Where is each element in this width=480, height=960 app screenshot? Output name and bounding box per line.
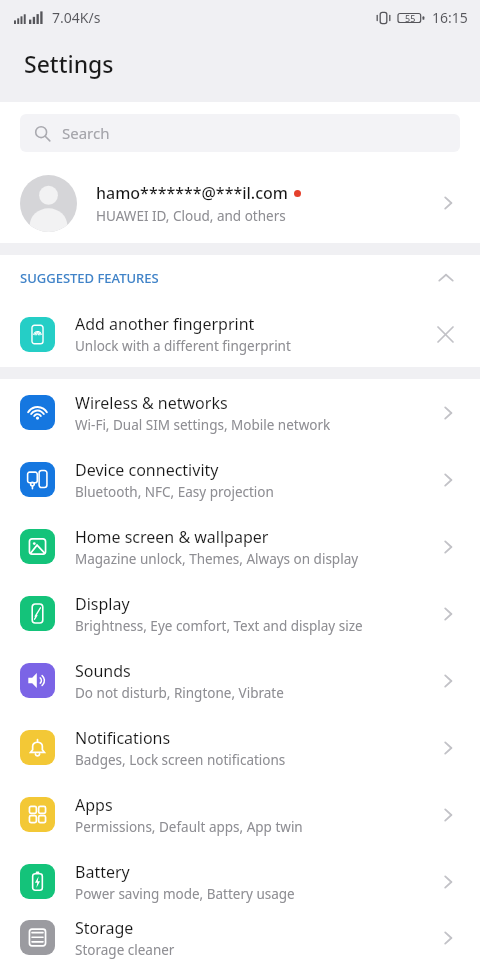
staticText: Badges, Lock screen notifications (75, 751, 286, 769)
button[interactable]: Search (20, 114, 460, 152)
staticText: Apps (75, 794, 113, 816)
staticText: Bluetooth, NFC, Easy projection (75, 483, 274, 501)
button[interactable]: Home screen & wallpaper (0, 513, 480, 580)
button[interactable]: Dismiss suggestion (430, 319, 460, 349)
button[interactable]: Collapse suggested features (432, 264, 460, 292)
staticText: SUGGESTED FEATURES (20, 269, 432, 287)
staticText: Permissions, Default apps, App twin (75, 818, 303, 836)
staticText: 55 (405, 12, 416, 24)
staticText: Storage (75, 917, 134, 939)
button[interactable]: hamo*******@***il.com (0, 165, 480, 241)
staticText: Notifications (75, 727, 171, 749)
button[interactable]: Storage (0, 915, 480, 960)
staticText: HUAWEI ID, Cloud, and others (96, 207, 286, 225)
staticText: hamo*******@***il.com (96, 182, 288, 204)
button[interactable]: Display (0, 580, 480, 647)
staticText: Settings (24, 48, 114, 79)
staticText: Unlock with a different fingerprint (75, 337, 291, 355)
staticText: Home screen & wallpaper (75, 526, 269, 548)
staticText: Magazine unlock, Themes, Always on displ… (75, 550, 359, 568)
staticText: Power saving mode, Battery usage (75, 885, 295, 903)
staticText: Add another fingerprint (75, 313, 255, 335)
button[interactable]: Apps (0, 781, 480, 848)
button[interactable]: Wireless & networks (0, 379, 480, 446)
staticText: Search (62, 123, 110, 143)
staticText: 16:15 (432, 8, 468, 27)
staticText: Storage cleaner (75, 941, 175, 959)
button[interactable]: SUGGESTED FEATURES (0, 255, 480, 301)
button[interactable]: Sounds (0, 647, 480, 714)
staticText: Do not disturb, Ringtone, Vibrate (75, 684, 284, 702)
button[interactable]: Battery (0, 848, 480, 915)
staticText: Wireless & networks (75, 392, 228, 414)
button[interactable]: Add another fingerprint (0, 301, 480, 367)
staticText: 7.04K/s (52, 8, 101, 27)
button[interactable]: Notifications (0, 714, 480, 781)
staticText: Brightness, Eye comfort, Text and displa… (75, 617, 363, 635)
staticText: Sounds (75, 660, 131, 682)
staticText: Wi-Fi, Dual SIM settings, Mobile network (75, 416, 331, 434)
staticText: Battery (75, 861, 130, 883)
staticText: Display (75, 593, 130, 615)
button[interactable]: Device connectivity (0, 446, 480, 513)
staticText: Device connectivity (75, 459, 219, 481)
